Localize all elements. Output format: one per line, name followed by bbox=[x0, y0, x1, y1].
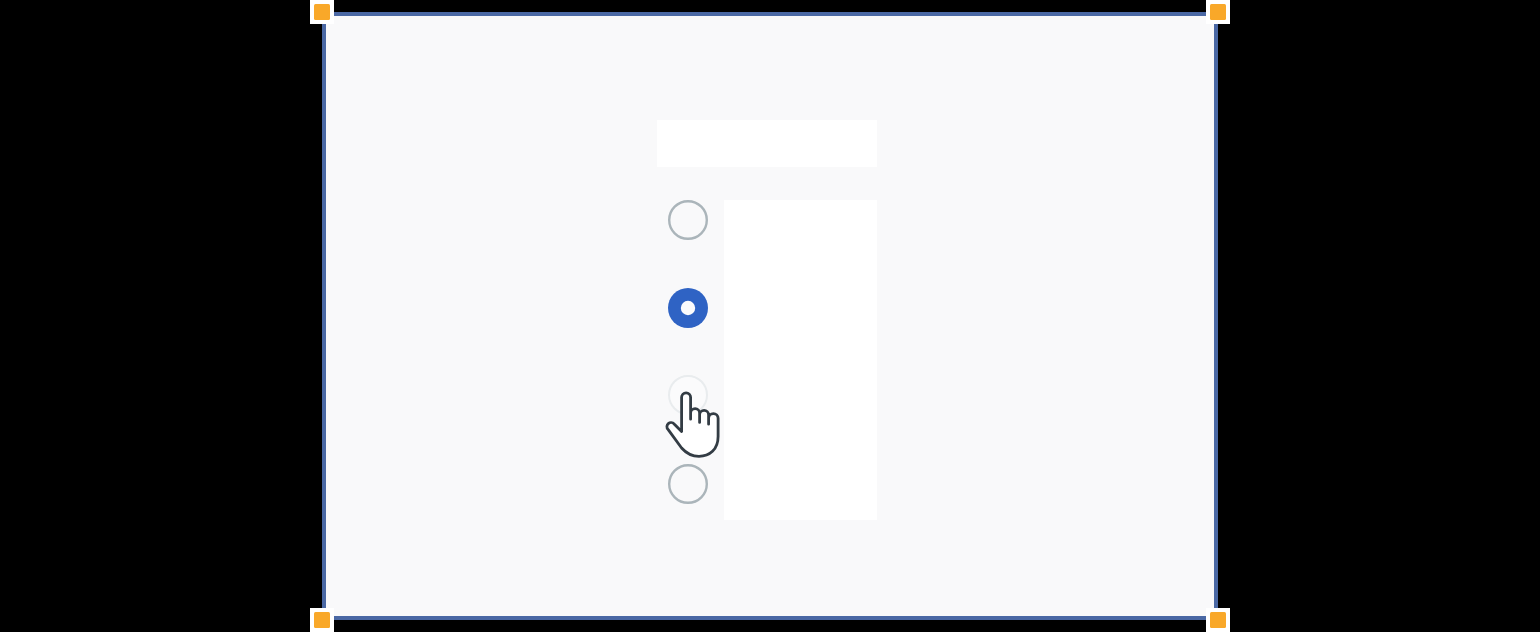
button[interactable]: Option 1 bbox=[668, 200, 708, 240]
button[interactable]: Option 2 bbox=[668, 288, 708, 328]
button[interactable]: Option 4 bbox=[668, 464, 708, 504]
button[interactable]: Option 3 bbox=[668, 375, 708, 415]
